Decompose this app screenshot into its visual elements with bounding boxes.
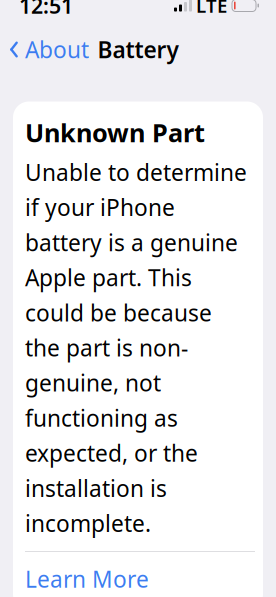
staticText: 12:51 — [19, 0, 73, 20]
staticText: LTE — [196, 0, 227, 18]
button[interactable]: Learn More — [25, 552, 255, 597]
staticText: Battery — [97, 34, 178, 65]
staticText: Unable to determine if your iPhone batte… — [25, 157, 247, 538]
staticText: About — [25, 34, 89, 65]
staticText: Unknown Part — [25, 115, 205, 149]
button[interactable]: About — [0, 28, 95, 71]
staticText: Learn More — [25, 564, 149, 594]
